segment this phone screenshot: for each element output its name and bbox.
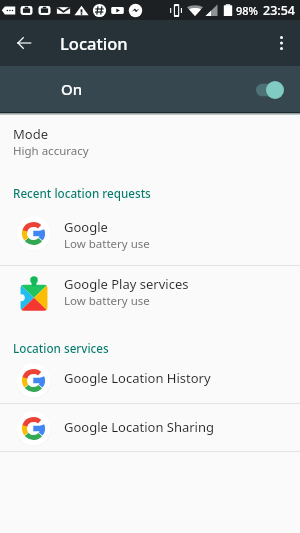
button[interactable]: On (0, 66, 300, 112)
button[interactable]: More options (266, 20, 300, 66)
staticText: Google Location History (64, 369, 211, 387)
staticText: Low battery use (64, 293, 150, 309)
staticText: On (61, 79, 83, 99)
staticText: Mode (13, 125, 48, 143)
button[interactable]: Mode (0, 122, 300, 170)
button[interactable] (0, 355, 300, 403)
button[interactable] (0, 209, 300, 265)
staticText: Recent location requests (13, 185, 151, 201)
staticText: 98% (236, 3, 258, 18)
staticText: Location services (13, 340, 109, 356)
button[interactable]: Navigate up (9, 20, 38, 66)
staticText: Google Location Sharing (64, 418, 215, 436)
staticText: Low battery use (64, 236, 150, 252)
staticText: Google (64, 218, 108, 236)
staticText: Google Play services (64, 275, 189, 293)
button[interactable] (0, 266, 300, 322)
staticText: Location (60, 32, 128, 54)
staticText: 23:54 (263, 2, 296, 19)
button[interactable] (0, 404, 300, 452)
staticText: High accuracy (13, 143, 89, 159)
